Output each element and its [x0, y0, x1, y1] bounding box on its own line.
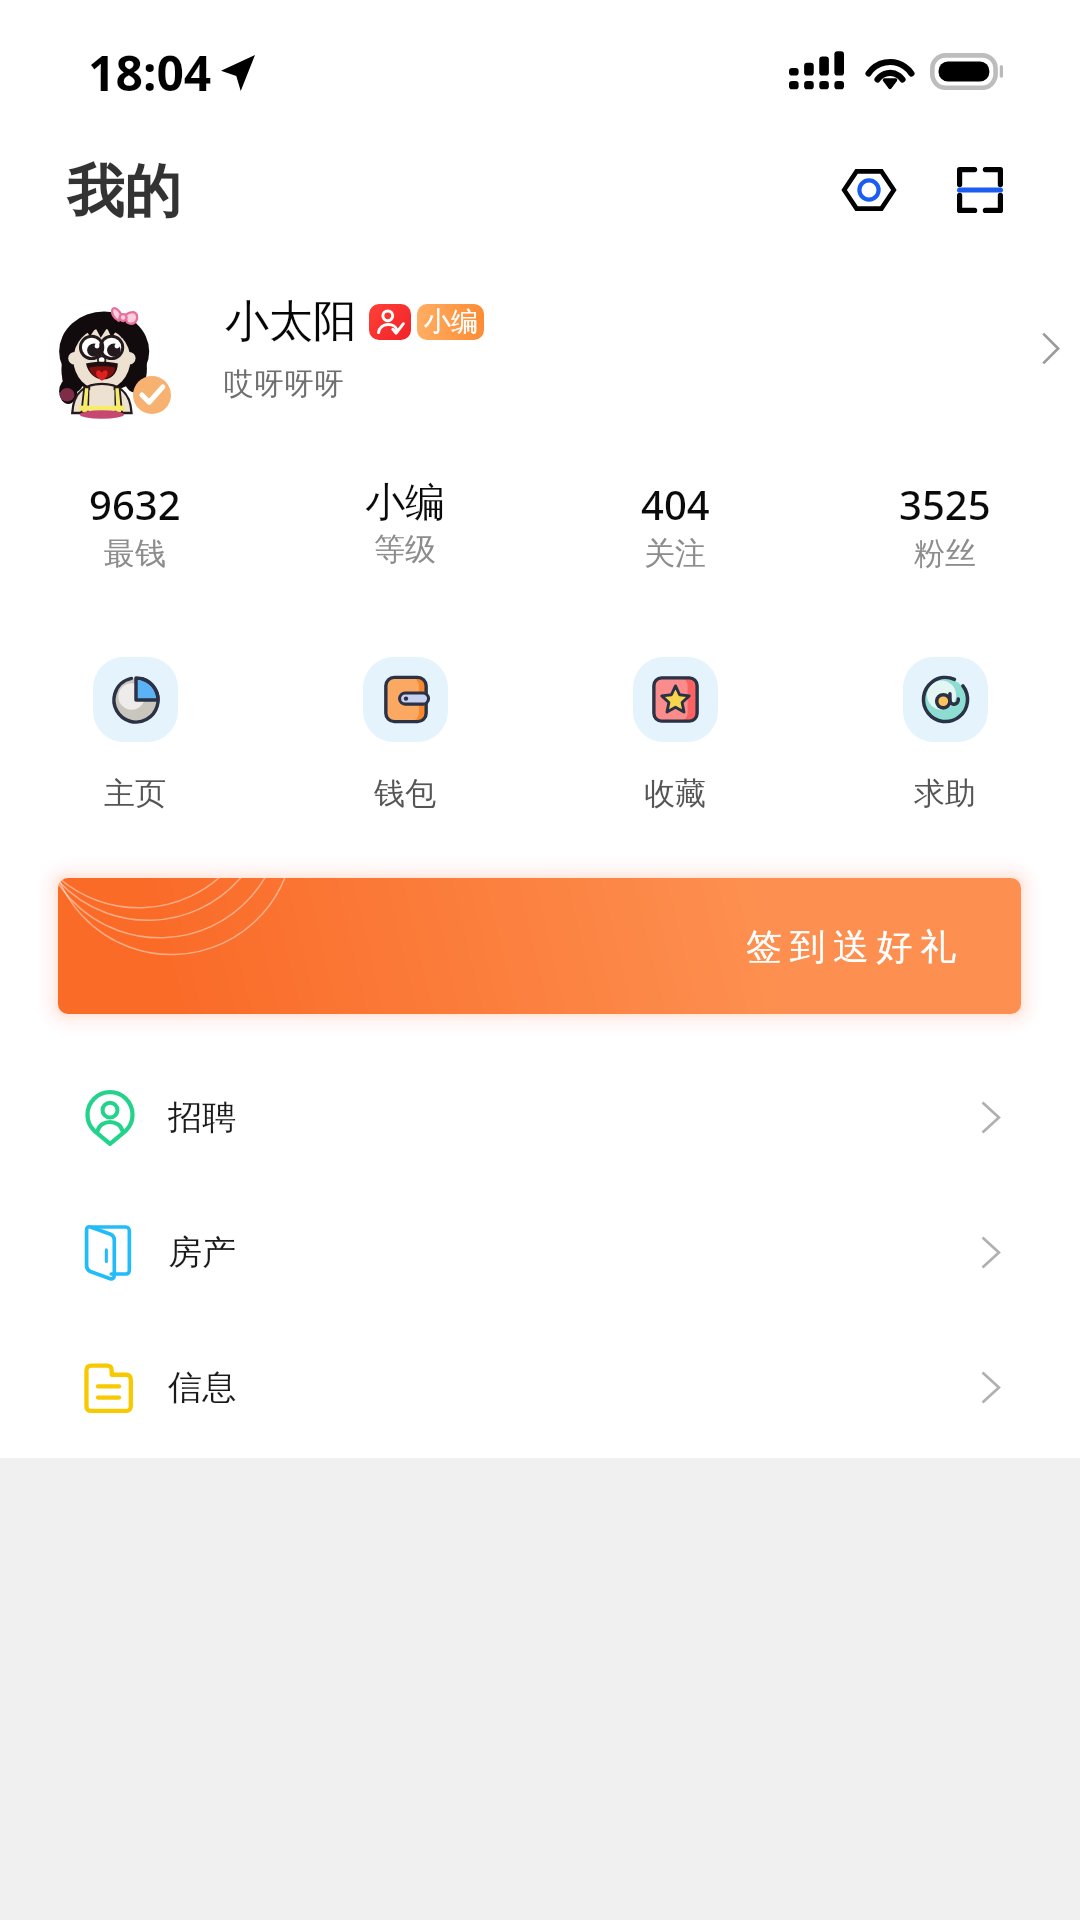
- button[interactable]: 9632: [0, 470, 270, 573]
- staticText: 404: [641, 477, 710, 531]
- staticText: 9632: [89, 477, 181, 531]
- button[interactable]: 钱包: [270, 657, 540, 813]
- staticText: 3525: [899, 477, 991, 531]
- staticText: 签到送好礼: [746, 924, 964, 969]
- staticText: 信息: [168, 1366, 236, 1409]
- button[interactable]: 招聘: [0, 1050, 1080, 1185]
- staticText: 18:04: [88, 40, 212, 105]
- staticText: 招聘: [168, 1096, 236, 1139]
- button[interactable]: 求助: [810, 657, 1080, 813]
- button[interactable]: 房产: [0, 1185, 1080, 1320]
- button[interactable]: 信息: [0, 1320, 1080, 1455]
- staticText: 最钱: [104, 534, 166, 573]
- button[interactable]: 收藏: [540, 657, 810, 813]
- staticText: 钱包: [374, 774, 436, 813]
- button[interactable]: 3525: [810, 470, 1080, 573]
- staticText: 小编: [424, 305, 478, 339]
- button[interactable]: 小编: [270, 470, 540, 569]
- staticText: 我的: [67, 156, 181, 228]
- staticText: 粉丝: [914, 534, 976, 573]
- staticText: 求助: [914, 774, 976, 813]
- staticText: 主页: [104, 774, 166, 813]
- staticText: 等级: [374, 530, 436, 569]
- staticText: 小编: [365, 477, 445, 527]
- button[interactable]: 主页: [0, 657, 270, 813]
- staticText: 收藏: [644, 774, 706, 813]
- button[interactable]: 小太阳: [0, 265, 1080, 450]
- staticText: 哎呀呀呀: [224, 365, 344, 403]
- button[interactable]: Settings: [827, 148, 911, 232]
- button[interactable]: Scan QR code: [938, 148, 1022, 232]
- staticText: 房产: [168, 1231, 236, 1274]
- button[interactable]: 签到送好礼: [58, 878, 1021, 1014]
- staticText: 小太阳: [225, 294, 357, 349]
- staticText: 关注: [644, 534, 706, 573]
- button[interactable]: 404: [540, 470, 810, 573]
